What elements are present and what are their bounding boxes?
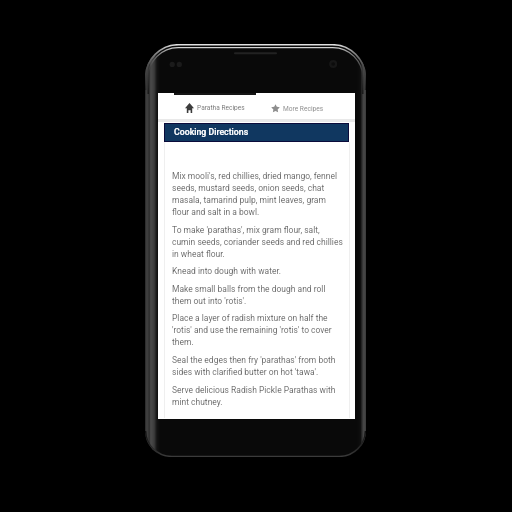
staticText: flour and salt in a bowl.: [172, 207, 260, 217]
staticText: Mix mooli's, red chillies, dried mango, …: [172, 171, 338, 181]
other: More Recipes: [271, 104, 280, 113]
button[interactable]: More Recipes: [256, 95, 339, 121]
staticText: masala, tamarind pulp, mint leaves, gram: [172, 195, 326, 205]
staticText: Make small balls from the dough and roll: [172, 284, 326, 294]
staticText: Cooking Directions: [174, 127, 249, 137]
staticText: Knead into dough with water.: [172, 266, 282, 276]
staticText: 'rotis' and use the remaining 'rotis' to…: [172, 325, 332, 335]
staticText: in wheat flour.: [172, 249, 225, 259]
staticText: Serve delicious Radish Pickle Parathas w…: [172, 385, 336, 395]
staticText: To make 'parathas', mix gram flour, salt…: [172, 225, 320, 235]
staticText: Paratha Recipes: [197, 104, 245, 112]
staticText: mint chutney.: [172, 397, 223, 407]
button[interactable]: Cooking Directions: [165, 124, 348, 141]
staticText: them out into 'rotis'.: [172, 296, 247, 306]
button[interactable]: Paratha Recipes home: [174, 95, 256, 121]
staticText: cumin seeds, coriander seeds and red chi…: [172, 237, 343, 247]
staticText: seeds, mustard seeds, onion seeds, chat: [172, 183, 325, 193]
staticText: More Recipes: [283, 105, 324, 113]
other: Paratha Recipes home: [185, 103, 194, 113]
staticText: sides with clarified butter on hot 'tawa…: [172, 367, 319, 377]
staticText: Place a layer of radish mixture on half …: [172, 313, 328, 323]
staticText: Seal the edges then fry 'parathas' from …: [172, 355, 336, 365]
staticText: them.: [172, 337, 194, 347]
